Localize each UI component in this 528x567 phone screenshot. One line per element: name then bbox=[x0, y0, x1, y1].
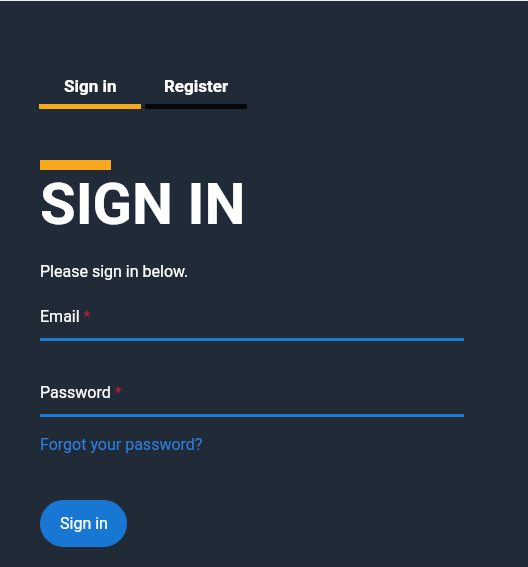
staticText: Register bbox=[164, 76, 229, 96]
button[interactable]: Sign in bbox=[39, 76, 141, 109]
staticText: Password * bbox=[40, 383, 122, 402]
staticText: Email * bbox=[40, 307, 91, 326]
staticText: Sign in bbox=[64, 76, 117, 96]
staticText: Please sign in below. bbox=[40, 262, 189, 281]
button[interactable]: Register bbox=[145, 76, 247, 109]
button[interactable]: Forgot your password? bbox=[40, 435, 203, 454]
button[interactable]: Sign in bbox=[40, 500, 127, 547]
staticText: SIGN IN bbox=[40, 170, 246, 238]
staticText: Sign in bbox=[60, 514, 108, 533]
